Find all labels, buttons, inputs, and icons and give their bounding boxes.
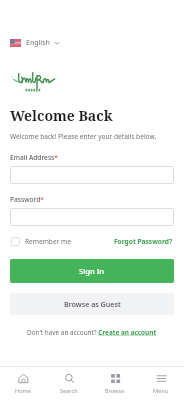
staticText: Browse as Guest: [64, 299, 121, 309]
button[interactable]: Search: [46, 367, 92, 400]
staticText: Welcome back! Please enter your details …: [10, 132, 157, 141]
staticText: Welcome Back: [10, 106, 113, 125]
button[interactable]: English: [9, 36, 61, 50]
staticText: English: [26, 38, 50, 48]
button[interactable]: Don't have an account? Create an account: [25, 326, 159, 339]
staticText: Remember me: [25, 237, 71, 246]
staticText: Password*: [10, 195, 44, 204]
button[interactable]: [10, 166, 174, 184]
button[interactable]: [10, 208, 174, 226]
staticText: Email Address*: [10, 153, 58, 162]
button[interactable]: Browse: [92, 367, 138, 400]
staticText: Home: [15, 387, 31, 395]
staticText: Menu: [153, 387, 169, 395]
staticText: Browse: [105, 387, 125, 395]
button[interactable]: Browse as Guest: [10, 293, 174, 315]
button[interactable]: Menu: [138, 367, 184, 400]
staticText: Sign In: [79, 266, 105, 276]
button[interactable]: Home: [0, 367, 46, 400]
staticText: Don't have an account? Create an account: [27, 328, 157, 337]
button[interactable]: Sign In: [10, 259, 174, 283]
button[interactable]: Forgot Password?: [113, 235, 174, 248]
staticText: Search: [60, 387, 78, 395]
button[interactable]: Remember me: [10, 235, 72, 248]
staticText: Forgot Password?: [114, 237, 173, 246]
